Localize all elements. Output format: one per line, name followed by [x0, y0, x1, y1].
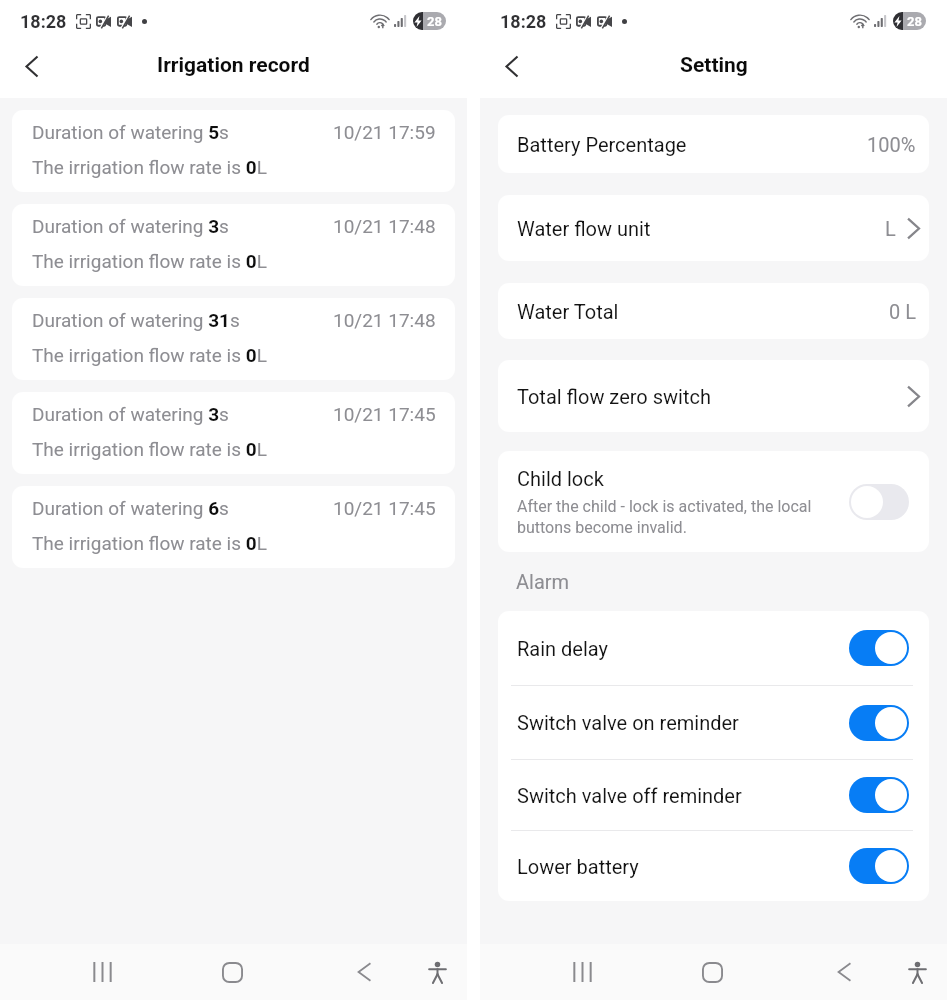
- staticText: 28: [907, 14, 922, 29]
- staticText: Child lock: [517, 467, 604, 490]
- button[interactable]: Water flow unit: [498, 195, 929, 261]
- staticText: 10/21 17:45: [333, 497, 436, 519]
- staticText: Switch valve on reminder: [517, 711, 739, 734]
- button[interactable]: Duration of watering 3s: [12, 204, 455, 286]
- button[interactable]: Back: [10, 44, 54, 88]
- staticText: The irrigation flow rate is 0L: [32, 250, 267, 272]
- button[interactable]: Switch on: [849, 630, 909, 666]
- button[interactable]: Home: [688, 948, 736, 996]
- staticText: Switch valve off reminder: [517, 784, 742, 807]
- button[interactable]: Accessibility: [413, 948, 461, 996]
- button[interactable]: Water Total: [498, 283, 929, 339]
- staticText: The irrigation flow rate is 0L: [32, 156, 267, 178]
- staticText: 10/21 17:48: [333, 215, 436, 237]
- button[interactable]: Switch valve on reminder: [498, 686, 929, 759]
- button[interactable]: Duration of watering 5s: [12, 110, 455, 192]
- button[interactable]: Duration of watering 31s: [12, 298, 455, 380]
- staticText: 0 L: [889, 300, 916, 323]
- button[interactable]: Child lock: [498, 451, 929, 552]
- staticText: Irrigation record: [157, 53, 310, 78]
- button[interactable]: Accessibility: [893, 948, 941, 996]
- staticText: Water flow unit: [517, 217, 651, 240]
- button[interactable]: Switch on: [849, 705, 909, 741]
- button[interactable]: Lower battery: [498, 831, 929, 901]
- staticText: L: [885, 217, 896, 240]
- staticText: 10/21 17:48: [333, 309, 436, 331]
- staticText: The irrigation flow rate is 0L: [32, 438, 267, 460]
- staticText: 18:28: [20, 11, 67, 32]
- button[interactable]: Rain delay: [498, 611, 929, 685]
- button[interactable]: Battery Percentage: [498, 115, 929, 173]
- button[interactable]: Recent apps: [558, 948, 606, 996]
- staticText: Duration of watering 3s: [32, 403, 229, 425]
- staticText: The irrigation flow rate is 0L: [32, 344, 267, 366]
- staticText: Duration of watering 3s: [32, 215, 229, 237]
- button[interactable]: Back: [820, 948, 868, 996]
- button[interactable]: Recent apps: [78, 948, 126, 996]
- staticText: 10/21 17:59: [333, 121, 436, 143]
- button[interactable]: Switch valve off reminder: [498, 760, 929, 830]
- staticText: After the child - lock is activated, the…: [517, 497, 812, 537]
- staticText: Duration of watering 31s: [32, 309, 240, 331]
- staticText: Water Total: [517, 300, 619, 323]
- button[interactable]: Duration of watering 6s: [12, 486, 455, 568]
- staticText: Rain delay: [517, 637, 609, 660]
- staticText: Lower battery: [517, 855, 639, 878]
- staticText: Total flow zero switch: [517, 385, 711, 408]
- staticText: 10/21 17:45: [333, 403, 436, 425]
- staticText: 100%: [867, 133, 916, 156]
- staticText: Duration of watering 5s: [32, 121, 229, 143]
- staticText: 28: [427, 14, 442, 29]
- button[interactable]: Total flow zero switch: [498, 360, 929, 432]
- staticText: Setting: [680, 53, 748, 78]
- button[interactable]: Back: [340, 948, 388, 996]
- staticText: Duration of watering 6s: [32, 497, 229, 519]
- staticText: Alarm: [516, 570, 570, 593]
- button[interactable]: Back: [490, 44, 534, 88]
- button[interactable]: Switch on: [849, 777, 909, 813]
- staticText: Battery Percentage: [517, 133, 687, 156]
- button[interactable]: Duration of watering 3s: [12, 392, 455, 474]
- staticText: 18:28: [500, 11, 547, 32]
- staticText: The irrigation flow rate is 0L: [32, 532, 267, 554]
- button[interactable]: Switch on: [849, 848, 909, 884]
- button[interactable]: Switch off: [849, 484, 909, 520]
- button[interactable]: Home: [208, 948, 256, 996]
